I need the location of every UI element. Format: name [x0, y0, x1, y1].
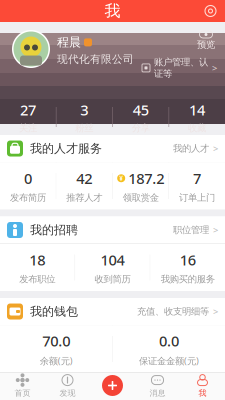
staticText: 16	[180, 250, 196, 269]
button[interactable]: 设置	[196, 0, 225, 22]
staticText: 余额(元)	[40, 354, 73, 367]
button[interactable]: 我的人才服务	[0, 135, 225, 162]
staticText: >	[213, 305, 218, 318]
staticText: 42	[76, 168, 92, 188]
staticText: 意见反馈	[30, 386, 78, 400]
staticText: 我购买的服务	[161, 273, 215, 285]
staticText: 职位管理	[173, 224, 209, 236]
staticText: 3	[80, 100, 88, 119]
staticText: 发布职位	[19, 273, 55, 285]
button[interactable]: 18	[0, 244, 75, 291]
staticText: 消息	[149, 388, 165, 398]
button[interactable]: 账户管理、认证等	[142, 56, 217, 79]
staticText: 70.0	[42, 331, 70, 351]
button[interactable]: 0	[0, 162, 56, 209]
button[interactable]: 发布	[90, 372, 135, 400]
button[interactable]: 我的招聘	[0, 216, 225, 243]
button[interactable]: 104	[75, 244, 150, 291]
staticText: ¥	[119, 174, 123, 183]
staticText: 保证金金额(元)	[139, 354, 199, 367]
staticText: 45	[133, 100, 149, 119]
staticText: 104	[100, 250, 124, 269]
staticText: 0	[24, 168, 32, 188]
staticText: 充值、收支明细等	[137, 306, 209, 317]
button[interactable]: 预览	[195, 31, 217, 50]
staticText: >	[212, 62, 217, 74]
button[interactable]: 我的钱包	[0, 298, 225, 325]
staticText: 我的人才	[173, 143, 209, 154]
staticText: 收藏	[188, 122, 206, 134]
staticText: 我的招聘	[30, 223, 78, 237]
staticText: 程晨	[57, 35, 81, 50]
button[interactable]: 意见反馈	[0, 379, 225, 400]
button[interactable]: 首页	[0, 372, 45, 400]
button[interactable]: 3	[56, 99, 112, 135]
staticText: 我的钱包	[30, 304, 78, 319]
staticText: >	[213, 224, 218, 236]
staticText: 27	[20, 100, 36, 119]
staticText: 推荐人才	[66, 192, 102, 203]
button[interactable]: 70.0	[0, 325, 112, 372]
staticText: 预览	[197, 39, 215, 50]
button[interactable]: 我	[180, 372, 225, 400]
staticText: 关注	[19, 122, 37, 134]
staticText: 现代化有限公司	[57, 53, 134, 66]
staticText: 发布简历	[10, 192, 46, 203]
staticText: 订单上门	[179, 192, 215, 203]
staticText: 账户管理、认证等	[154, 56, 208, 79]
button[interactable]: 7	[169, 162, 225, 209]
button[interactable]: 发现	[45, 372, 90, 400]
staticText: 发现	[59, 388, 75, 398]
staticText: 分享	[132, 122, 150, 134]
staticText: 粉丝	[75, 122, 93, 134]
button[interactable]: 0.0	[113, 325, 225, 372]
button[interactable]: 14	[169, 99, 225, 135]
button[interactable]: 消息	[135, 372, 180, 400]
button[interactable]: 27	[0, 99, 56, 135]
button[interactable]: 45	[113, 99, 169, 135]
staticText: 14	[189, 100, 205, 119]
staticText: 我	[104, 1, 120, 21]
staticText: 0.0	[159, 331, 179, 351]
button[interactable]: 16	[150, 244, 225, 291]
staticText: 18	[29, 250, 45, 269]
staticText: 我的人才服务	[30, 141, 102, 156]
staticText: 首页	[14, 388, 30, 398]
staticText: 领取赏金	[123, 192, 159, 203]
button[interactable]: ¥	[113, 162, 169, 209]
staticText: 我	[198, 388, 206, 398]
staticText: 7	[193, 168, 201, 188]
staticText: >	[213, 142, 218, 155]
staticText: 187.2	[128, 168, 164, 188]
staticText: 收到简历	[94, 273, 130, 285]
button[interactable]: 42	[56, 162, 112, 209]
